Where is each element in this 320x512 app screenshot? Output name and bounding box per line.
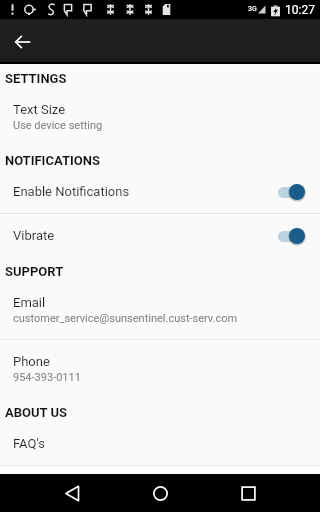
button[interactable]: Navigate up <box>10 29 36 55</box>
staticText: customer_service@sunsentinel.cust-serv.c… <box>13 312 238 325</box>
button[interactable]: Text Size <box>0 88 320 146</box>
staticText: ABOUT US <box>5 405 68 420</box>
staticText: Use device setting <box>13 119 103 132</box>
button[interactable]: Home <box>141 474 179 512</box>
staticText: SETTINGS <box>5 71 67 86</box>
button[interactable]: Phone <box>0 340 320 398</box>
staticText: Phone <box>13 354 50 369</box>
staticText: FAQ's <box>13 436 45 451</box>
staticText: Text Size <box>13 102 66 117</box>
button[interactable]: FAQ's <box>0 422 320 465</box>
button[interactable]: Email <box>0 281 320 339</box>
staticText: Vibrate <box>13 228 55 243</box>
staticText: NOTIFICATIONS <box>5 153 100 168</box>
staticText: Email <box>13 295 46 310</box>
button[interactable]: Vibrate <box>0 214 320 257</box>
staticText: 3G <box>248 4 257 13</box>
button[interactable]: Enable Notifications <box>0 170 320 213</box>
staticText: Enable Notifications <box>13 184 130 199</box>
staticText: 954-393-0111 <box>13 371 81 384</box>
staticText: SUPPORT <box>5 264 64 279</box>
staticText: 10:27 <box>285 3 315 17</box>
button[interactable]: Back <box>53 474 91 512</box>
button[interactable]: Recent apps <box>229 474 267 512</box>
